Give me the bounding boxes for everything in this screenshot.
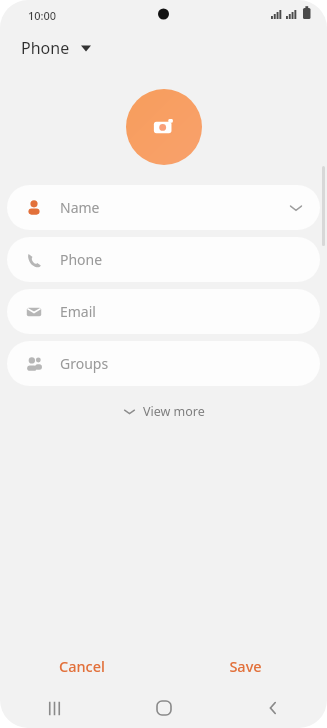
button[interactable]: Home [109, 688, 218, 728]
staticText: Cancel [59, 656, 105, 676]
staticText: Email [60, 302, 320, 321]
button[interactable]: Email [7, 289, 320, 334]
staticText: Phone [60, 250, 320, 269]
button[interactable]: Save [163, 644, 327, 688]
button[interactable]: Add photo [126, 89, 202, 165]
staticText: Save [229, 656, 262, 676]
button[interactable]: Back [218, 688, 327, 728]
staticText: Name [60, 198, 288, 217]
staticText: View more [143, 403, 205, 420]
staticText: Groups [60, 354, 320, 373]
button[interactable]: View more [113, 398, 215, 425]
staticText: 10:00 [28, 8, 57, 23]
button[interactable]: Recents [0, 688, 109, 728]
button[interactable]: Cancel [0, 644, 163, 688]
button[interactable]: Groups [7, 341, 320, 386]
button[interactable]: Phone [7, 237, 320, 282]
button[interactable]: Name [7, 185, 320, 230]
staticText: Phone [21, 37, 70, 59]
button[interactable]: Phone [0, 30, 327, 66]
